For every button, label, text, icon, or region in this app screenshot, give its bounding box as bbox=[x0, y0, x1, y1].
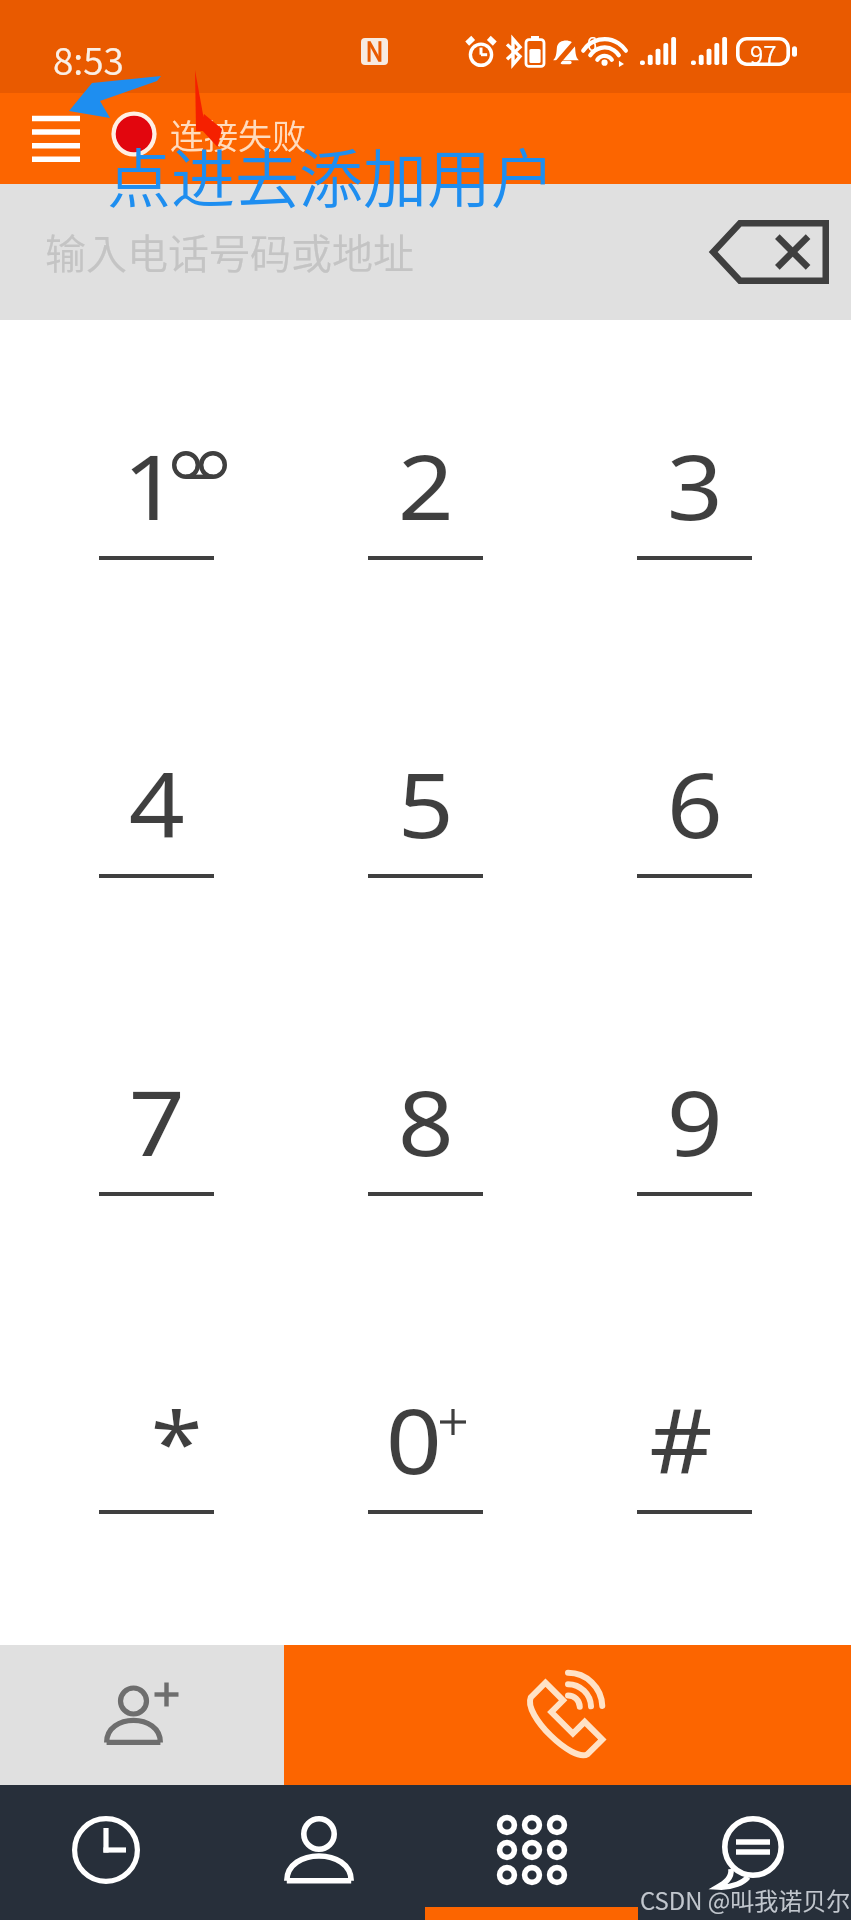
button[interactable]: * bbox=[22, 1281, 291, 1599]
staticText: 8:53 bbox=[53, 32, 124, 86]
button[interactable]: 1 bbox=[22, 327, 291, 645]
staticText: 1 bbox=[123, 424, 179, 547]
staticText: 输入电话号码或地址 bbox=[45, 221, 414, 280]
staticText: 点进去添加用户 bbox=[107, 128, 555, 221]
button[interactable]: # bbox=[560, 1281, 829, 1599]
staticText: 9 bbox=[667, 1060, 723, 1183]
staticText: 8 bbox=[398, 1060, 454, 1183]
staticText: 5 bbox=[398, 742, 454, 865]
button[interactable]: 4 bbox=[22, 645, 291, 963]
button[interactable]: Call bbox=[284, 1645, 851, 1785]
button[interactable]: Menu bbox=[12, 95, 100, 183]
button[interactable]: Messages bbox=[638, 1785, 851, 1920]
staticText: CSDN @叫我诺贝尔 bbox=[640, 1882, 851, 1917]
staticText: 4 bbox=[129, 742, 185, 865]
button[interactable]: 8 bbox=[291, 963, 560, 1281]
staticText: 7 bbox=[129, 1060, 185, 1183]
staticText: 6 bbox=[587, 30, 597, 56]
button[interactable]: Dial pad bbox=[425, 1785, 638, 1920]
button[interactable]: 9 bbox=[560, 963, 829, 1281]
button[interactable]: Backspace bbox=[693, 202, 843, 302]
staticText: 6 bbox=[667, 742, 723, 865]
button[interactable]: 5 bbox=[291, 645, 560, 963]
staticText: 3 bbox=[667, 424, 723, 547]
button[interactable]: Add contact bbox=[0, 1645, 284, 1785]
button[interactable]: Recent calls bbox=[0, 1785, 212, 1920]
staticText: 2 bbox=[398, 424, 454, 547]
staticText: * bbox=[151, 1382, 203, 1499]
button[interactable]: 0 bbox=[291, 1281, 560, 1599]
staticText: 0 bbox=[386, 1378, 442, 1501]
button[interactable]: Contacts bbox=[212, 1785, 425, 1920]
button[interactable]: 3 bbox=[560, 327, 829, 645]
button[interactable]: 2 bbox=[291, 327, 560, 645]
button[interactable]: 7 bbox=[22, 963, 291, 1281]
button[interactable]: 6 bbox=[560, 645, 829, 963]
staticText: # bbox=[649, 1378, 714, 1501]
staticText: 连接失败 bbox=[170, 110, 306, 159]
staticText: 97 bbox=[750, 36, 777, 65]
